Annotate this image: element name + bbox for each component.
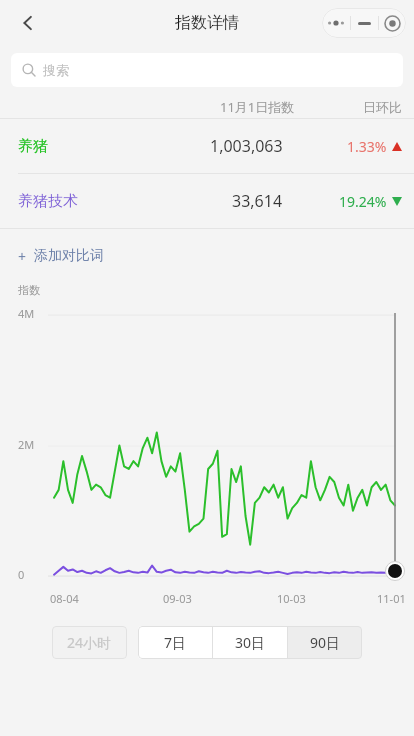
button[interactable]: 关闭 — [379, 8, 406, 38]
button[interactable]: 搜索 — [11, 53, 403, 87]
button[interactable]: 更多 — [322, 8, 350, 38]
button[interactable]: 最小化 — [351, 8, 378, 38]
staticText: 08-04 — [50, 591, 79, 606]
button[interactable]: 90日 — [288, 626, 362, 659]
button[interactable]: 30日 — [213, 626, 287, 659]
staticText: 7日 — [164, 633, 187, 652]
staticText: 19.24% — [339, 192, 387, 211]
staticText: 1,003,063 — [210, 135, 283, 157]
staticText: 1.33% — [347, 137, 387, 156]
staticText: 10-03 — [277, 591, 306, 606]
staticText: 指数 — [18, 283, 40, 297]
staticText: 90日 — [310, 633, 341, 652]
button[interactable]: 返回 — [10, 5, 46, 41]
staticText: 搜索 — [43, 62, 69, 78]
staticText: + — [18, 247, 27, 266]
staticText: 指数详情 — [175, 13, 239, 33]
staticText: 30日 — [235, 633, 266, 652]
button[interactable]: 养猪 — [0, 119, 414, 173]
staticText: 4M — [18, 306, 35, 321]
staticText: 33,614 — [232, 190, 283, 212]
staticText: 09-03 — [163, 591, 192, 606]
staticText: 2M — [18, 437, 35, 452]
button[interactable]: 24小时 — [52, 626, 127, 659]
staticText: 添加对比词 — [34, 247, 104, 265]
staticText: 0 — [18, 567, 25, 582]
button[interactable]: 养猪技术 — [0, 174, 414, 228]
button[interactable]: 7日 — [138, 626, 212, 659]
staticText: 养猪技术 — [18, 192, 78, 211]
staticText: 养猪 — [18, 137, 48, 156]
button[interactable]: + — [18, 243, 104, 269]
staticText: 11-01 — [377, 591, 406, 606]
staticText: 日环比 — [363, 99, 402, 115]
staticText: 24小时 — [67, 633, 112, 652]
staticText: 11月1日指数 — [220, 98, 295, 116]
